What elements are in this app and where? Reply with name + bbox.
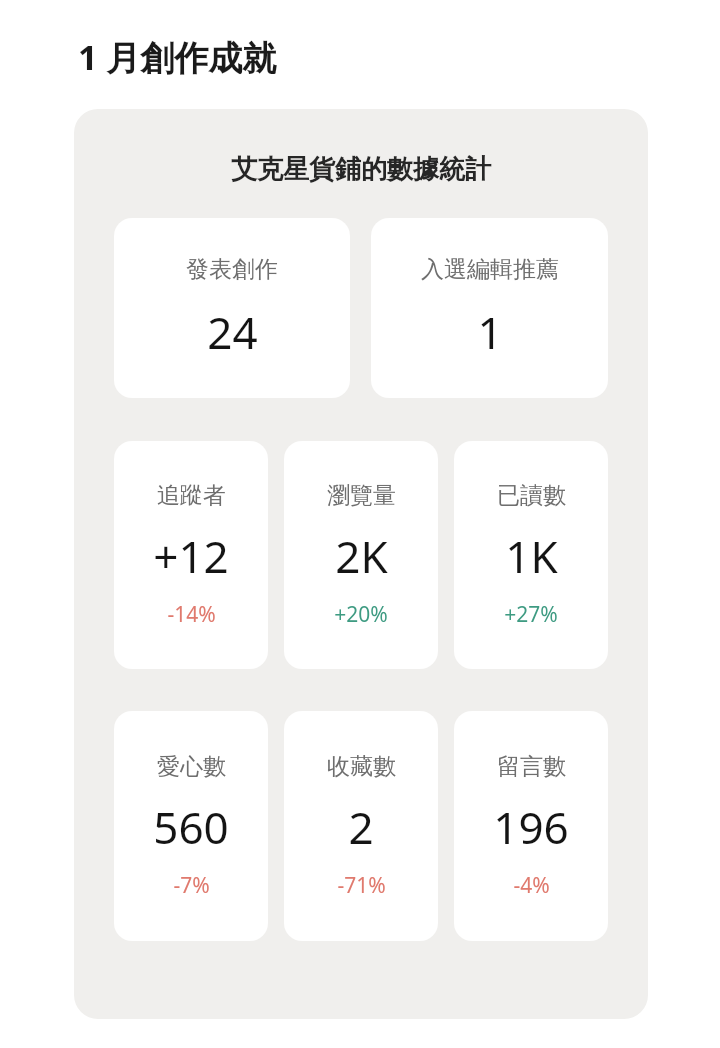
staticText: 追蹤者 xyxy=(157,481,226,510)
staticText: +27% xyxy=(504,600,558,629)
button[interactable]: 已讀數 xyxy=(454,441,608,669)
staticText: 24 xyxy=(207,302,258,362)
staticText: +20% xyxy=(334,600,388,629)
staticText: -7% xyxy=(173,871,210,900)
staticText: 2 xyxy=(348,797,374,857)
staticText: 2K xyxy=(335,526,388,586)
staticText: +12 xyxy=(153,526,229,586)
staticText: 發表創作 xyxy=(186,255,278,284)
staticText: 艾克星貨鋪的數據統計 xyxy=(231,153,491,186)
staticText: -14% xyxy=(167,600,216,629)
staticText: 196 xyxy=(493,797,569,857)
staticText: -71% xyxy=(337,871,386,900)
button[interactable]: 愛心數 xyxy=(114,711,268,941)
staticText: 愛心數 xyxy=(157,752,226,781)
staticText: 1 xyxy=(477,302,503,362)
button[interactable]: 發表創作 xyxy=(114,218,350,398)
staticText: 留言數 xyxy=(497,752,566,781)
staticText: 已讀數 xyxy=(497,481,566,510)
staticText: -4% xyxy=(513,871,550,900)
button[interactable]: 入選編輯推薦 xyxy=(371,218,608,398)
staticText: 1 月創作成就 xyxy=(78,34,277,80)
button[interactable]: 瀏覽量 xyxy=(284,441,438,669)
button[interactable]: 收藏數 xyxy=(284,711,438,941)
button[interactable]: 留言數 xyxy=(454,711,608,941)
staticText: 1K xyxy=(505,526,558,586)
button[interactable]: 追蹤者 xyxy=(114,441,268,669)
staticText: 收藏數 xyxy=(327,752,396,781)
staticText: 瀏覽量 xyxy=(327,481,396,510)
staticText: 560 xyxy=(153,797,229,857)
staticText: 入選編輯推薦 xyxy=(421,255,559,284)
